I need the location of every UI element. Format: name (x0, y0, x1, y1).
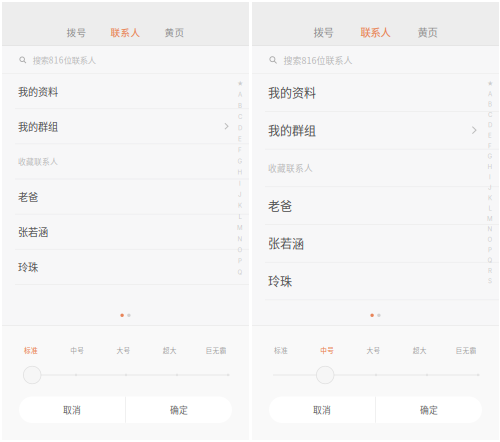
button[interactable]: 我的群组 (252, 112, 499, 149)
staticText: J (488, 184, 492, 191)
staticText: K (238, 202, 242, 209)
staticText: 张若涵 (268, 235, 304, 252)
staticText: 超大 (163, 345, 177, 355)
staticText: C (238, 113, 242, 120)
staticText: ★ (487, 80, 493, 87)
staticText: Q (237, 268, 242, 276)
staticText: J (238, 191, 242, 198)
button[interactable]: 拨号 (63, 19, 89, 45)
button[interactable]: 巨无霸 (193, 345, 239, 355)
staticText: 我的资料 (268, 84, 316, 101)
staticText: 玲珠 (268, 272, 292, 290)
staticText: B (238, 102, 242, 109)
staticText: P (488, 246, 492, 254)
staticText: G (487, 153, 492, 160)
staticText: L (238, 213, 241, 220)
button[interactable]: 黄页 (414, 18, 440, 46)
button[interactable]: 联系人 (107, 19, 143, 45)
button[interactable]: 老爸 (252, 187, 499, 224)
staticText: 巨无霸 (455, 345, 476, 355)
staticText: N (487, 225, 492, 233)
staticText: 玲珠 (18, 259, 38, 274)
staticText: E (238, 135, 242, 143)
staticText: P (238, 257, 242, 265)
staticText: M (487, 215, 493, 222)
staticText: I (239, 180, 241, 187)
staticText: Q (487, 257, 492, 264)
staticText: 老爸 (268, 197, 292, 214)
staticText: L (488, 205, 491, 212)
staticText: 黄页 (417, 24, 437, 40)
button[interactable]: 取消 (269, 396, 375, 423)
staticText: 拨号 (313, 24, 333, 40)
button[interactable]: 我的资料 (2, 74, 249, 108)
staticText: 大号 (366, 345, 380, 355)
staticText: 老爸 (18, 189, 38, 204)
staticText: 我的群组 (268, 122, 316, 139)
staticText: 联系人 (360, 24, 390, 40)
staticText: 拨号 (66, 25, 86, 39)
staticText: R (488, 267, 492, 274)
staticText: 中号 (70, 345, 84, 355)
staticText: E (488, 132, 492, 139)
staticText: ★ (237, 80, 243, 87)
staticText: 标准 (24, 345, 38, 355)
button[interactable]: 玲珠 (252, 262, 499, 300)
button[interactable]: 老爸 (2, 179, 249, 214)
button[interactable]: 搜索816位联系人 (2, 46, 249, 74)
staticText: 超大 (413, 345, 427, 355)
staticText: 取消 (63, 403, 81, 416)
staticText: H (237, 169, 242, 176)
button[interactable]: 中号 (54, 345, 100, 355)
staticText: D (238, 124, 242, 132)
staticText: 巨无霸 (205, 345, 226, 355)
staticText: D (488, 121, 492, 129)
staticText: S (488, 277, 492, 285)
staticText: 我的资料 (18, 84, 58, 99)
staticText: N (237, 235, 242, 243)
button[interactable]: 确定 (376, 396, 482, 423)
button[interactable]: 大号 (350, 345, 397, 355)
staticText: F (488, 142, 492, 150)
staticText: 张若涵 (18, 224, 48, 239)
button[interactable]: 标准 (8, 345, 54, 355)
staticText: M (237, 224, 243, 231)
staticText: F (238, 146, 242, 154)
staticText: 标准 (274, 345, 288, 355)
staticText: I (489, 173, 491, 181)
button[interactable]: 中号 (304, 345, 350, 355)
button[interactable]: 我的资料 (252, 74, 499, 111)
button[interactable]: 超大 (397, 345, 443, 355)
staticText: H (487, 163, 492, 170)
staticText: C (488, 111, 492, 118)
staticText: 搜索816位联系人 (283, 53, 352, 66)
staticText: 中号 (320, 345, 334, 355)
staticText: 我的群组 (18, 119, 58, 134)
button[interactable]: 超大 (147, 345, 193, 355)
staticText: 确定 (420, 403, 438, 416)
button[interactable]: 大号 (100, 345, 147, 355)
button[interactable]: 搜索816位联系人 (252, 46, 499, 74)
staticText: 收藏联系人 (18, 156, 58, 167)
button[interactable]: 标准 (258, 345, 304, 355)
button[interactable]: 巨无霸 (443, 345, 489, 355)
button[interactable]: 我的群组 (2, 109, 249, 144)
staticText: 大号 (116, 345, 130, 355)
button[interactable]: 玲珠 (2, 249, 249, 284)
button[interactable]: 张若涵 (2, 214, 249, 249)
staticText: 确定 (170, 403, 188, 416)
button[interactable]: 取消 (19, 396, 125, 423)
button[interactable]: 联系人 (357, 18, 393, 46)
staticText: 搜索816位联系人 (33, 54, 96, 66)
staticText: K (488, 194, 492, 202)
button[interactable]: 确定 (126, 396, 232, 423)
staticText: 取消 (313, 403, 331, 416)
staticText: B (488, 101, 492, 108)
button[interactable]: 张若涵 (252, 225, 499, 262)
button[interactable]: 黄页 (161, 19, 187, 45)
staticText: 联系人 (110, 25, 140, 39)
staticText: 收藏联系人 (268, 162, 313, 174)
staticText: O (237, 246, 242, 254)
staticText: A (238, 91, 242, 98)
button[interactable]: 拨号 (310, 18, 336, 46)
